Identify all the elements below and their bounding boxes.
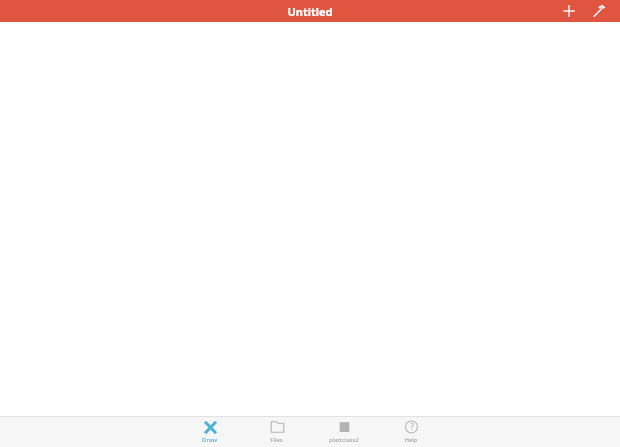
staticText: Untitled: [287, 4, 333, 19]
button[interactable]: plattclass2: [310, 417, 377, 447]
staticText: Draw: [202, 436, 217, 444]
staticText: Files: [270, 436, 283, 444]
button[interactable]: Files: [243, 417, 310, 447]
button[interactable]: ?: [377, 417, 444, 447]
button[interactable]: Tools: [588, 0, 610, 22]
button[interactable]: Draw: [176, 417, 243, 447]
button[interactable]: Add: [558, 0, 580, 22]
staticText: plattclass2: [329, 436, 359, 444]
staticText: Help: [404, 436, 418, 444]
staticText: ?: [410, 421, 414, 432]
